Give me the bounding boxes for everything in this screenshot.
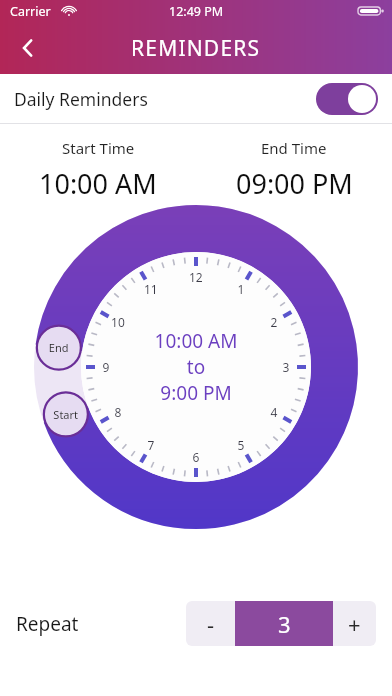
button[interactable]: Daily Reminders toggle — [316, 83, 378, 115]
staticText: + — [348, 609, 361, 639]
button[interactable]: Back — [6, 26, 50, 70]
staticText: - — [207, 609, 215, 639]
button[interactable]: 3 — [235, 601, 333, 646]
button[interactable]: Start Time — [0, 136, 196, 204]
staticText: 3 — [278, 609, 291, 639]
staticText: 12:49 PM — [169, 3, 224, 20]
staticText: Carrier — [10, 3, 51, 20]
button[interactable]: Decrease repeat — [186, 601, 235, 646]
staticText: End Time — [261, 138, 327, 158]
staticText: Daily Reminders — [14, 87, 148, 111]
button[interactable]: Increase repeat — [333, 601, 376, 646]
button[interactable]: Time range dial — [0, 204, 392, 544]
staticText: Repeat — [16, 611, 79, 637]
staticText: 09:00 PM — [236, 165, 353, 202]
button[interactable]: End Time — [196, 136, 392, 204]
staticText: 10:00 AM — [39, 165, 157, 202]
staticText: REMINDERS — [131, 34, 261, 63]
staticText: Start Time — [62, 138, 135, 158]
button[interactable]: Daily Reminders — [0, 74, 392, 123]
